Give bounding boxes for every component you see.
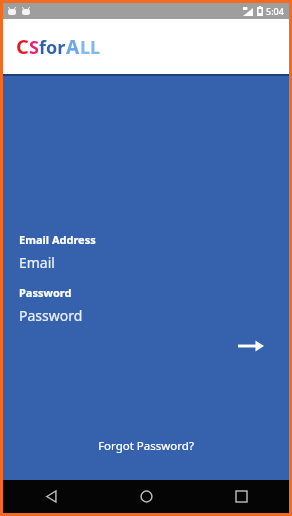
button[interactable]: Forgot Password? [88, 434, 204, 458]
button[interactable]: Recent apps [194, 480, 289, 513]
staticText: 5:04 [266, 5, 284, 17]
staticText: A [66, 34, 80, 60]
staticText: LL [80, 35, 101, 60]
staticText: Password [19, 306, 83, 325]
staticText: Email Address [19, 232, 96, 247]
staticText: C [16, 33, 29, 60]
staticText: S [29, 35, 39, 60]
staticText: Password [19, 285, 72, 300]
button[interactable]: Email [19, 253, 273, 272]
button[interactable]: Home [99, 480, 194, 513]
staticText: for [39, 35, 66, 60]
button[interactable]: Back [3, 480, 99, 513]
staticText: Email [19, 253, 55, 272]
staticText: Forgot Password? [98, 438, 194, 454]
button[interactable]: Password [19, 306, 273, 325]
button[interactable]: Sign in [229, 331, 273, 361]
